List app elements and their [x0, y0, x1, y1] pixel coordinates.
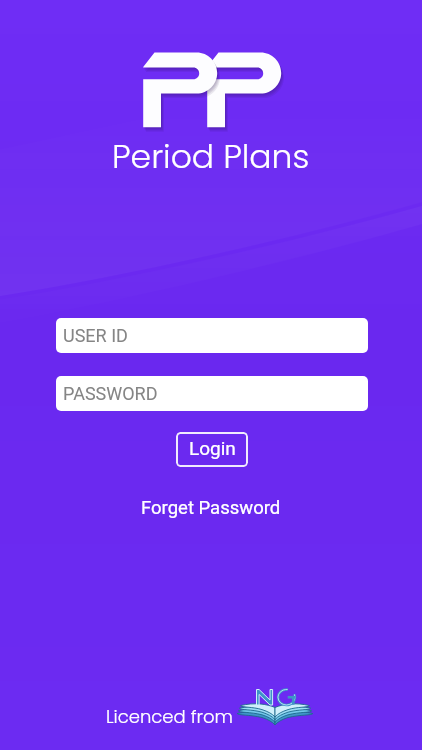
- staticText: Login: [189, 437, 236, 459]
- button[interactable]: Login: [176, 432, 248, 467]
- button[interactable]: Forget Password: [135, 494, 287, 522]
- staticText: Licenced from: [106, 704, 233, 729]
- button[interactable]: Licenced from: [106, 704, 233, 729]
- staticText: Period Plans: [112, 133, 310, 179]
- staticText: USER ID: [63, 325, 128, 346]
- other: Publisher logo: [236, 686, 318, 730]
- staticText: PASSWORD: [63, 383, 158, 404]
- staticText: Forget Password: [141, 497, 281, 519]
- button[interactable]: PASSWORD: [56, 376, 368, 411]
- button[interactable]: USER ID: [56, 318, 368, 353]
